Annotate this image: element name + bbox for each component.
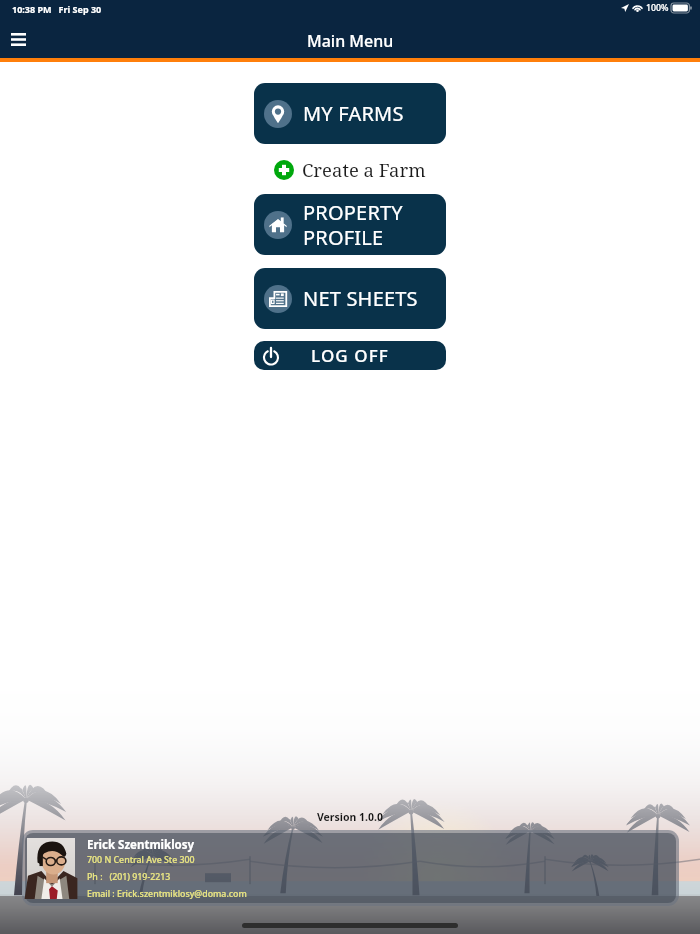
button[interactable]: MY FARMS [254,83,446,144]
staticText: LOG OFF [280,344,420,367]
button[interactable]: LOG OFF [254,341,446,370]
button[interactable]: NET SHEETS [254,268,446,329]
staticText: 700 N Central Ave Ste 300 [87,854,195,866]
staticText: Erick Szentmiklosy [87,837,195,853]
button[interactable]: Create a Farm [268,154,432,185]
button[interactable]: Erick Szentmiklosy [22,830,679,906]
staticText: Main Menu [307,30,394,52]
staticText: 10:38 PM Fri Sep 30 [12,3,102,15]
staticText: PROPERTY PROFILE [303,199,403,251]
button[interactable]: Open navigation menu [1,22,35,56]
staticText: Ph : (201) 919-2213 [87,871,171,883]
staticText: Email : Erick.szentmiklosy@doma.com [87,888,247,900]
staticText: Version 1.0.0 [0,810,700,824]
staticText: MY FARMS [303,100,404,127]
staticText: NET SHEETS [303,285,418,312]
button[interactable]: PROPERTY PROFILE [254,194,446,255]
staticText: 100% [646,2,669,14]
staticText: Create a Farm [302,157,426,182]
